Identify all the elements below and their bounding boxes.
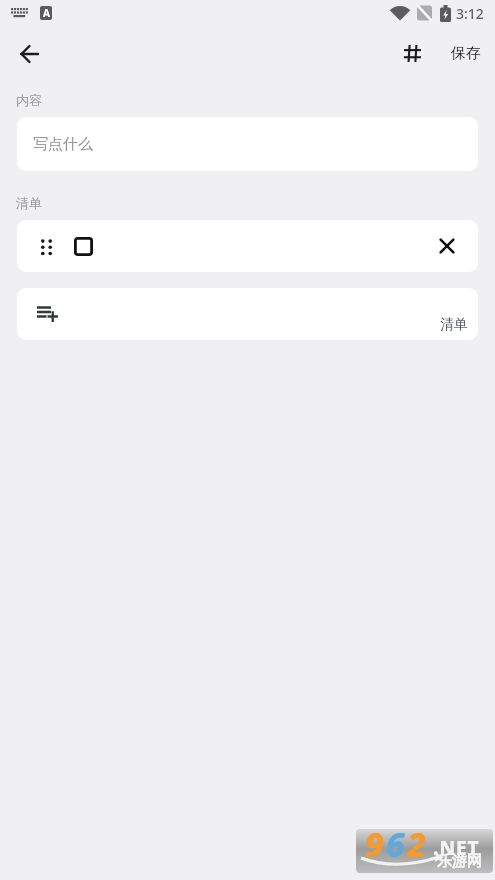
- staticText: 3:12: [456, 4, 484, 23]
- staticText: 内容: [16, 92, 42, 108]
- button[interactable]: [41, 239, 52, 254]
- staticText: 清单: [16, 195, 42, 211]
- button[interactable]: 962: [356, 829, 493, 873]
- button[interactable]: 写点什么: [17, 117, 478, 171]
- button[interactable]: [440, 239, 454, 253]
- staticText: 保存: [451, 44, 481, 63]
- staticText: 写点什么: [33, 135, 93, 154]
- staticText: A: [43, 6, 50, 20]
- button[interactable]: 保存: [451, 44, 481, 63]
- button[interactable]: [74, 237, 93, 256]
- button[interactable]: [404, 45, 421, 62]
- staticText: 乐游网: [437, 852, 482, 871]
- button[interactable]: [12, 36, 48, 72]
- button[interactable]: 清单: [17, 288, 478, 340]
- staticText: 清单: [440, 316, 468, 334]
- staticText: .NET: [433, 835, 480, 861]
- staticText: 962: [365, 829, 429, 866]
